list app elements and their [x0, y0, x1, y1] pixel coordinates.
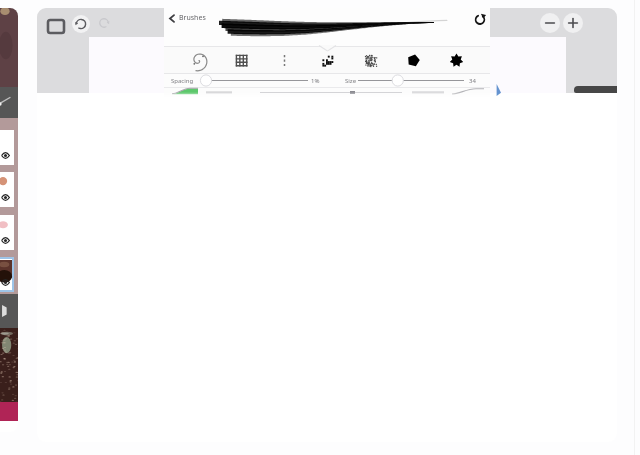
- button[interactable]: [0, 172, 14, 207]
- button[interactable]: Zoom out: [540, 13, 560, 33]
- button[interactable]: Brush 5: [349, 47, 392, 73]
- button[interactable]: Undo: [67, 10, 95, 38]
- staticText: Brushes: [179, 13, 206, 23]
- button[interactable]: [0, 257, 14, 292]
- staticText: 1%: [311, 77, 320, 85]
- button[interactable]: Brush 4: [306, 47, 349, 73]
- button[interactable]: Brush 7: [435, 47, 478, 73]
- staticText: Spacing: [171, 77, 194, 85]
- button[interactable]: Redo: [90, 9, 118, 37]
- button[interactable]: Zoom in: [563, 13, 583, 33]
- button[interactable]: Size: [345, 74, 480, 87]
- button[interactable]: Brush 2: [220, 47, 263, 73]
- staticText: 34: [469, 77, 476, 85]
- button[interactable]: [0, 215, 14, 250]
- button[interactable]: [0, 130, 14, 165]
- button[interactable]: Brush 3: [263, 47, 306, 73]
- button[interactable]: Spacing: [171, 74, 324, 87]
- button[interactable]: Brushes: [167, 13, 206, 23]
- button[interactable]: Reset brush: [473, 12, 487, 26]
- button[interactable]: Brush 1: [176, 47, 220, 73]
- button[interactable]: Brush 6: [392, 47, 435, 73]
- staticText: Size: [345, 77, 357, 85]
- button[interactable]: Canvas size: [41, 11, 71, 41]
